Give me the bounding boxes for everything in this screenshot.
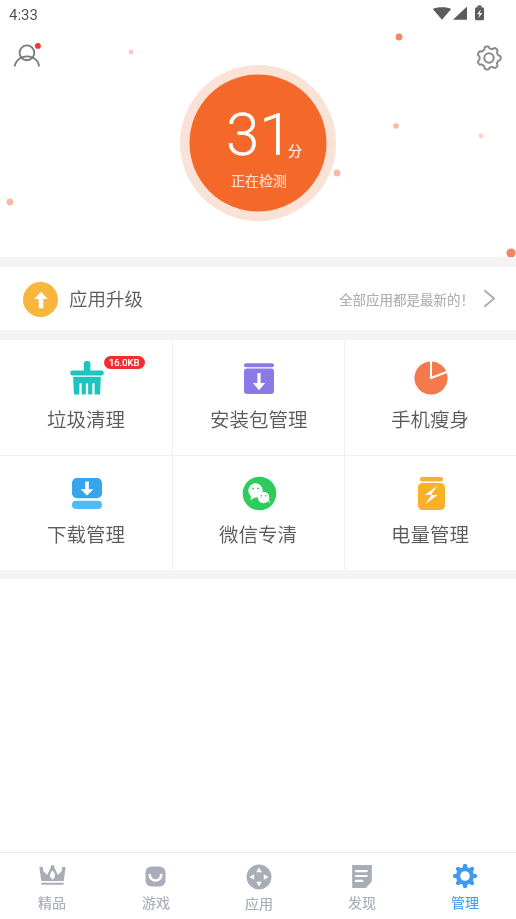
- button[interactable]: Settings: [466, 35, 512, 81]
- staticText: 16.0KB: [109, 357, 140, 368]
- staticText: 应用升级: [69, 285, 144, 312]
- button[interactable]: 游戏: [104, 853, 207, 919]
- staticText: 精品: [38, 892, 66, 912]
- button[interactable]: 16.0KB: [0, 340, 172, 455]
- button[interactable]: 应用: [207, 853, 310, 919]
- button[interactable]: Profile: [5, 37, 51, 83]
- staticText: 电量管理: [391, 519, 470, 547]
- button[interactable]: 安装包管理: [173, 340, 344, 455]
- staticText: 管理: [451, 892, 479, 912]
- button[interactable]: 精品: [0, 853, 104, 919]
- button[interactable]: 微信专清: [173, 456, 344, 570]
- button[interactable]: 下载管理: [0, 456, 172, 570]
- staticText: 垃圾清理: [47, 404, 126, 432]
- button[interactable]: 电量管理: [345, 456, 516, 570]
- staticText: 下载管理: [47, 519, 126, 547]
- staticText: 4:33: [9, 6, 38, 24]
- staticText: 31: [226, 99, 293, 169]
- staticText: 发现: [348, 892, 376, 912]
- staticText: 应用: [245, 893, 273, 913]
- button[interactable]: 应用升级: [0, 267, 516, 330]
- staticText: 手机瘦身: [391, 404, 470, 432]
- staticText: 游戏: [142, 892, 170, 912]
- button[interactable]: 手机瘦身: [345, 340, 516, 455]
- button[interactable]: 管理: [413, 853, 516, 919]
- staticText: 全部应用都是最新的！: [339, 289, 474, 309]
- staticText: 正在检测: [231, 170, 287, 190]
- staticText: 微信专清: [219, 519, 298, 547]
- button[interactable]: 发现: [310, 853, 413, 919]
- staticText: 分: [288, 140, 302, 160]
- staticText: 安装包管理: [210, 404, 308, 432]
